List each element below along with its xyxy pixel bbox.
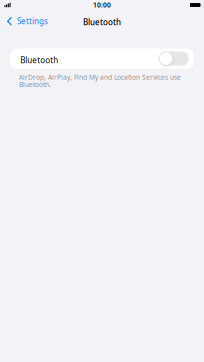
button[interactable]: Settings <box>0 14 52 28</box>
button[interactable]: Bluetooth <box>10 48 194 69</box>
button[interactable]: Bluetooth, off <box>159 51 189 66</box>
staticText: Bluetooth <box>83 17 121 27</box>
staticText: AirDrop, AirPlay, Find My and Location S… <box>19 73 181 89</box>
staticText: Settings <box>17 16 48 26</box>
staticText: 10:00 <box>93 1 111 9</box>
staticText: Bluetooth <box>20 55 58 65</box>
